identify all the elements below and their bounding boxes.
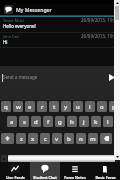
staticText: c <box>44 135 47 143</box>
button[interactable]: a <box>7 116 17 127</box>
button[interactable]: r <box>37 101 47 112</box>
button[interactable]: Send message <box>106 71 118 83</box>
staticText: k <box>94 118 98 126</box>
staticText: Tester Mobi <box>3 18 24 23</box>
button[interactable]: Student Chat <box>30 162 60 180</box>
button[interactable]: o <box>97 101 107 112</box>
staticText: x <box>31 135 35 143</box>
button[interactable]: John Doe <box>0 33 120 48</box>
button[interactable]: m <box>88 133 98 144</box>
button[interactable] <box>100 133 112 144</box>
staticText: z <box>20 135 23 143</box>
button[interactable]: n <box>76 133 86 144</box>
staticText: Forex Notes <box>64 175 86 180</box>
staticText: j <box>83 118 85 126</box>
button[interactable]: d <box>31 116 41 127</box>
button[interactable]: My Messenger <box>0 4 120 15</box>
staticText: 26/09/2013, 19: <box>81 33 114 39</box>
button[interactable]: b <box>64 133 74 144</box>
button[interactable]: Live Feeds <box>0 162 30 180</box>
staticText: e <box>28 103 32 111</box>
button[interactable]: i <box>85 101 95 112</box>
staticText: y <box>64 103 68 111</box>
button[interactable]: f <box>43 116 53 127</box>
staticText: b <box>67 135 71 143</box>
staticText: Basic Forex <box>95 175 116 180</box>
staticText: Hello everyone! <box>3 23 36 29</box>
button[interactable]: j <box>79 116 89 127</box>
button[interactable]: Tester Mobi <box>0 17 120 32</box>
button[interactable]: Symbols <box>1 155 7 162</box>
button[interactable]: Scroll down <box>114 154 120 160</box>
button[interactable]: Space <box>8 155 115 162</box>
staticText: Student Chat <box>33 175 57 180</box>
staticText: Send a message <box>3 74 38 80</box>
button[interactable]: c <box>40 133 50 144</box>
staticText: John Doe <box>3 34 20 39</box>
staticText: m <box>90 135 96 143</box>
staticText: f <box>47 118 50 126</box>
staticText: 26/09/2013, 19: <box>81 17 114 23</box>
staticText: a <box>10 118 14 126</box>
staticText: q <box>4 103 8 111</box>
staticText: d <box>34 118 38 126</box>
button[interactable]: q <box>1 101 11 112</box>
staticText: Live Feeds <box>6 175 25 180</box>
button[interactable]: e <box>25 101 35 112</box>
button[interactable]: u <box>73 101 83 112</box>
button[interactable]: Forex Notes <box>60 162 90 180</box>
staticText: p <box>112 103 116 111</box>
staticText: Hi <box>3 39 8 45</box>
button[interactable]: Scroll up <box>114 0 120 6</box>
button[interactable]: t <box>49 101 59 112</box>
staticText: l <box>107 118 109 126</box>
button[interactable]: k <box>91 116 101 127</box>
staticText: h <box>70 118 74 126</box>
staticText: My Messenger <box>16 6 52 13</box>
staticText: v <box>55 135 59 143</box>
staticText: w <box>16 103 21 111</box>
staticText: o <box>100 103 104 111</box>
staticText: r <box>41 103 44 111</box>
button[interactable]: s <box>19 116 29 127</box>
staticText: n <box>79 135 83 143</box>
staticText: s <box>23 118 26 126</box>
staticText: i <box>89 103 91 111</box>
button[interactable]: y <box>61 101 71 112</box>
button[interactable]: w <box>13 101 23 112</box>
button[interactable]: v <box>52 133 62 144</box>
button[interactable]: g <box>55 116 65 127</box>
button[interactable]: Basic Forex <box>90 162 120 180</box>
button[interactable]: l <box>103 116 113 127</box>
staticText: u <box>76 103 80 111</box>
button[interactable]: z <box>16 133 26 144</box>
button[interactable]: x <box>28 133 38 144</box>
button[interactable] <box>1 133 14 144</box>
staticText: t <box>53 103 56 111</box>
button[interactable]: p <box>109 101 119 112</box>
button[interactable]: h <box>67 116 77 127</box>
staticText: g <box>58 118 62 126</box>
